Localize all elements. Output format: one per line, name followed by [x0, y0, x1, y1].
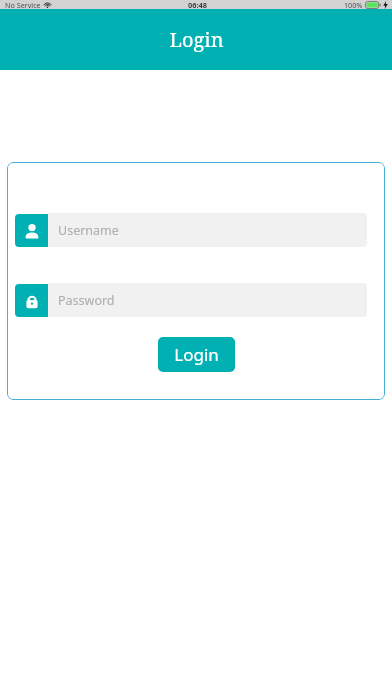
- staticText: 100%: [344, 0, 363, 9]
- staticText: 06:48: [188, 0, 207, 9]
- button[interactable]: Username: [15, 213, 367, 247]
- staticText: Username: [58, 222, 119, 239]
- other: Password: [15, 284, 48, 317]
- button[interactable]: Password: [15, 283, 367, 317]
- other: Username: [15, 214, 48, 247]
- staticText: No Service: [5, 0, 41, 9]
- staticText: Login: [169, 26, 224, 53]
- button[interactable]: Login: [158, 337, 235, 372]
- staticText: Password: [58, 292, 115, 309]
- staticText: Login: [174, 343, 219, 366]
